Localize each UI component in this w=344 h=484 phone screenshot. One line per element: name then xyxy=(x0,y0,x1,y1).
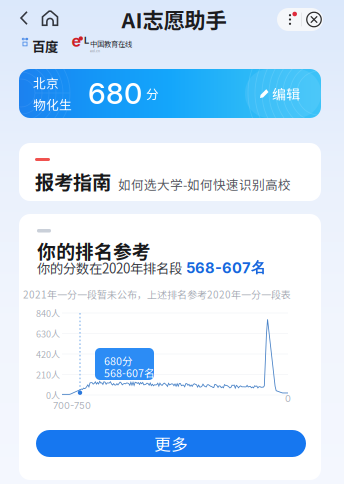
button[interactable]: Back xyxy=(11,4,37,32)
button[interactable]: 报考指南 xyxy=(19,143,321,201)
staticText: 630人 xyxy=(36,327,60,340)
staticText: 分 xyxy=(146,84,159,103)
staticText: 0 xyxy=(285,393,291,404)
staticText: L xyxy=(84,35,89,46)
staticText: 680 xyxy=(88,76,142,111)
staticText: 680分 xyxy=(104,353,133,368)
button[interactable]: Close xyxy=(304,9,324,29)
button[interactable]: 北京 xyxy=(19,69,321,118)
staticText: 568-607名 xyxy=(104,365,155,380)
staticText: 420人 xyxy=(36,347,60,360)
staticText: 更多 xyxy=(154,431,188,455)
staticText: 0人 xyxy=(46,388,60,401)
staticText: 物化生 xyxy=(33,95,72,113)
staticText: 中国教育在线 xyxy=(90,38,132,49)
staticText: e xyxy=(71,31,81,51)
staticText: 210人 xyxy=(36,368,60,381)
staticText: 北京 xyxy=(33,74,59,92)
staticText: 你的排名参考 xyxy=(37,237,151,264)
staticText: 你的分数在2020年排名段 xyxy=(37,258,182,277)
staticText: 如何选大学-如何快速识别高校 xyxy=(118,175,291,193)
staticText: 报考指南 xyxy=(35,167,111,195)
staticText: 百度 xyxy=(32,36,58,56)
staticText: 2021年一分一段暂未公布，上述排名参考2020年一分一段表 xyxy=(23,287,291,301)
staticText: AI志愿助手 xyxy=(121,4,226,34)
staticText: 840人 xyxy=(36,306,60,319)
button[interactable]: 更多 xyxy=(36,430,306,457)
button[interactable]: More xyxy=(280,9,300,29)
staticText: eol.cn xyxy=(90,49,100,53)
staticText: 700-750 xyxy=(53,400,91,411)
staticText: 568-607名 xyxy=(186,258,266,277)
staticText: 编辑 xyxy=(272,83,300,104)
button[interactable]: Home xyxy=(37,4,63,32)
